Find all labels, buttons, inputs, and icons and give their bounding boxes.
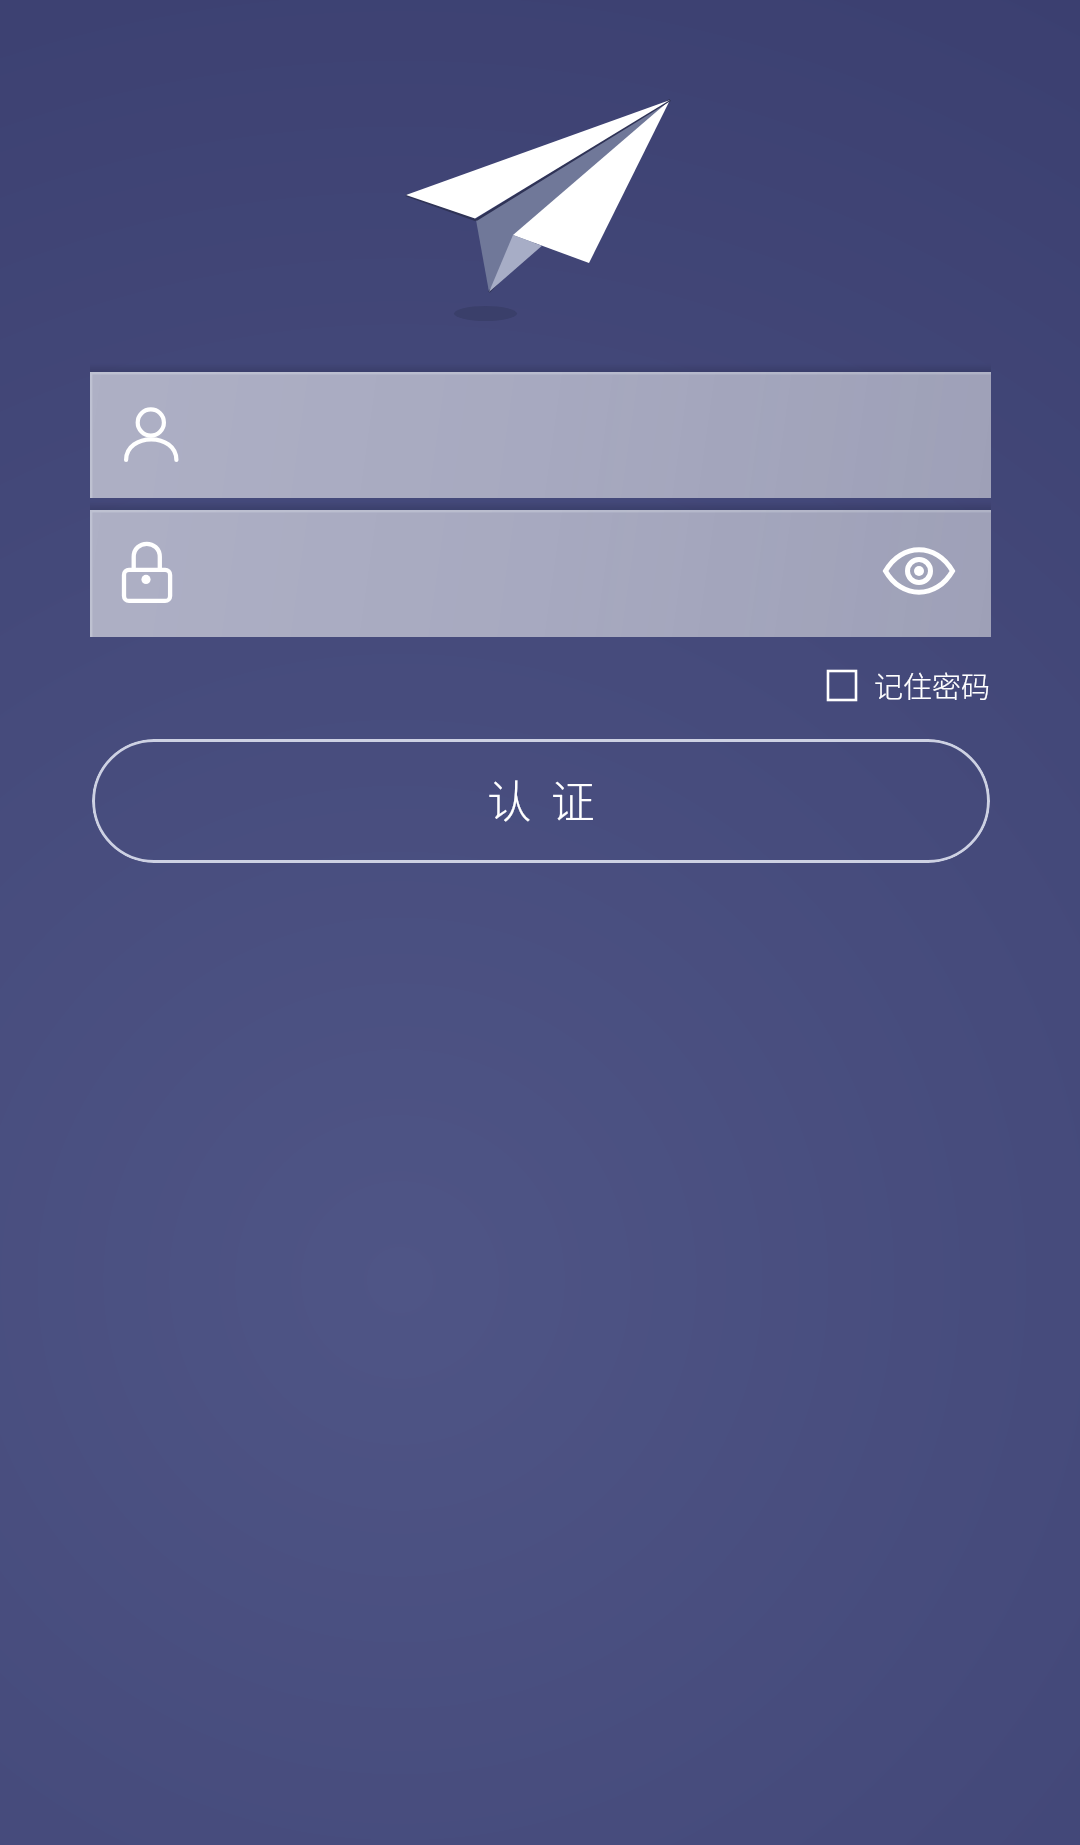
staticText: 认 证 (487, 767, 595, 831)
button[interactable] (90, 372, 991, 498)
button[interactable]: Show password (884, 531, 974, 615)
button[interactable]: Show password (90, 510, 991, 637)
button[interactable]: 记住密码 (812, 655, 1002, 715)
staticText: 记住密码 (874, 664, 991, 706)
button[interactable]: 认 证 (92, 739, 990, 863)
